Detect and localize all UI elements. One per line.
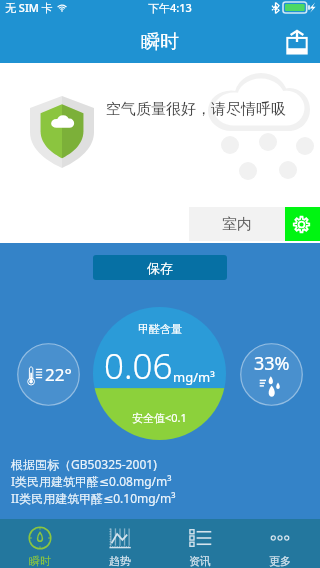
staticText: 33% [254, 351, 290, 376]
staticText: 更多 [269, 554, 291, 568]
staticText: 瞬时 [141, 30, 179, 54]
button[interactable]: 室内 [189, 207, 285, 241]
staticText: 安全值<0.1 [132, 410, 187, 425]
staticText: 22° [45, 363, 72, 386]
staticText: 趋势 [109, 554, 131, 568]
staticText: 空气质量很好，请尽情呼吸 [106, 100, 286, 119]
staticText: 根据国标（GB50325-2001) [11, 456, 157, 472]
button[interactable]: Settings [285, 207, 320, 241]
button[interactable]: 更多 [240, 519, 320, 568]
staticText: 甲醛含量 [138, 322, 182, 336]
staticText: 0.06 [104, 342, 173, 390]
button[interactable]: 趋势 [80, 519, 160, 568]
staticText: 保存 [147, 260, 173, 276]
button[interactable]: 资讯 [160, 519, 240, 568]
staticText: 瞬时 [29, 554, 51, 568]
staticText: I类民用建筑甲醛≤0.08mg/m³ [11, 473, 172, 489]
button[interactable]: 瞬时 [0, 519, 80, 568]
staticText: mg/m³ [173, 368, 215, 386]
button[interactable]: Share [277, 22, 317, 62]
staticText: 室内 [222, 215, 252, 234]
staticText: 下午4:13 [148, 0, 192, 15]
staticText: 资讯 [189, 554, 211, 568]
staticText: II类民用建筑甲醛≤0.10mg/m³ [11, 490, 176, 506]
staticText: 无 SIM 卡 [5, 0, 53, 15]
button[interactable]: 保存 [93, 255, 227, 280]
